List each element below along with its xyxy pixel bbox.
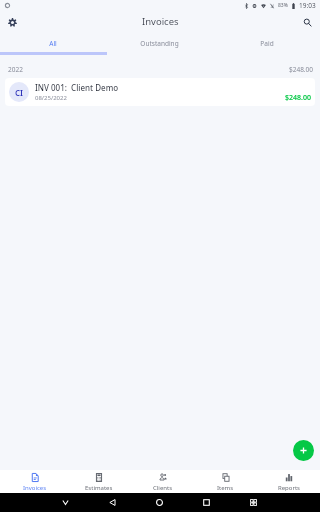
button[interactable]: Add invoice xyxy=(293,440,314,461)
staticText: Clients xyxy=(153,484,173,492)
staticText: Reports xyxy=(278,484,300,492)
button[interactable]: Recents xyxy=(199,495,213,509)
staticText: CI xyxy=(15,87,24,98)
staticText: $248.00 xyxy=(285,93,311,103)
staticText: Outstanding xyxy=(140,39,179,48)
button[interactable]: Paid xyxy=(213,34,320,52)
staticText: Items xyxy=(217,484,234,492)
staticText: Estimates xyxy=(85,484,113,492)
staticText: 08/25/2022 xyxy=(35,94,67,102)
staticText: $248.00 xyxy=(289,65,314,73)
button[interactable]: Clients xyxy=(131,470,194,493)
button[interactable]: Reports xyxy=(257,470,320,493)
button[interactable]: Home xyxy=(152,495,166,509)
button[interactable]: Outstanding xyxy=(106,34,213,52)
staticText: 2022 xyxy=(8,65,23,73)
button[interactable]: Back xyxy=(105,495,119,509)
button[interactable]: Switch keyboard xyxy=(246,495,260,509)
staticText: Paid xyxy=(260,39,274,48)
button[interactable]: Estimates xyxy=(67,470,131,493)
button[interactable]: Items xyxy=(194,470,257,493)
button[interactable]: Settings xyxy=(3,13,21,31)
staticText: Invoices xyxy=(142,15,179,28)
staticText: All xyxy=(49,39,57,48)
staticText: 83% xyxy=(278,2,288,9)
staticText: Invoices xyxy=(23,484,47,492)
staticText: 19:03 xyxy=(299,1,316,10)
button[interactable]: Search xyxy=(298,13,316,31)
button[interactable]: Invoices xyxy=(3,470,67,493)
button[interactable]: Hide keyboard xyxy=(58,495,72,509)
button[interactable]: CI xyxy=(5,78,315,106)
staticText: INV 001: Client Demo xyxy=(35,82,119,93)
button[interactable]: All xyxy=(0,34,106,52)
